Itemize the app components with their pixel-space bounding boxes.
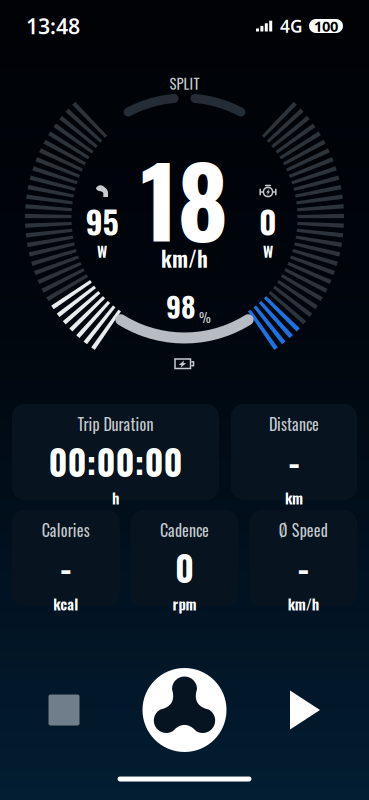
staticText: km/h (288, 593, 319, 615)
staticText: 100 (314, 16, 338, 36)
staticText: 4G (280, 14, 303, 37)
staticText: 00:00:00 (48, 436, 182, 487)
staticText: W (263, 240, 273, 262)
button[interactable]: Stop (33, 679, 95, 741)
staticText: h (112, 487, 119, 509)
staticText: rpm (172, 593, 196, 615)
staticText: 13:48 (26, 12, 80, 40)
staticText: - (60, 542, 71, 593)
staticText: - (298, 542, 309, 593)
staticText: 95 (85, 197, 118, 245)
staticText: Ø Speed (279, 518, 328, 542)
staticText: % (199, 307, 211, 327)
staticText: 98 (166, 285, 196, 327)
staticText: kcal (53, 593, 78, 615)
button[interactable]: Start (274, 679, 336, 741)
button[interactable]: Distance (231, 404, 357, 500)
staticText: - (288, 436, 299, 487)
button[interactable]: Ø Speed (249, 510, 357, 606)
button[interactable]: Calories (12, 510, 120, 606)
button[interactable]: Menu (142, 668, 226, 752)
staticText: Calories (42, 518, 90, 542)
staticText: Trip Duration (77, 412, 153, 436)
button[interactable]: Cadence (131, 510, 238, 606)
button[interactable]: Trip Duration (12, 404, 219, 500)
staticText: 0 (259, 197, 277, 245)
staticText: Cadence (160, 518, 209, 542)
staticText: 18 (140, 126, 228, 270)
staticText: km/h (161, 242, 208, 274)
staticText: Distance (269, 412, 319, 436)
staticText: W (97, 240, 107, 262)
staticText: km (285, 487, 303, 509)
staticText: 0 (175, 542, 194, 593)
staticText: SPLIT (169, 72, 199, 94)
